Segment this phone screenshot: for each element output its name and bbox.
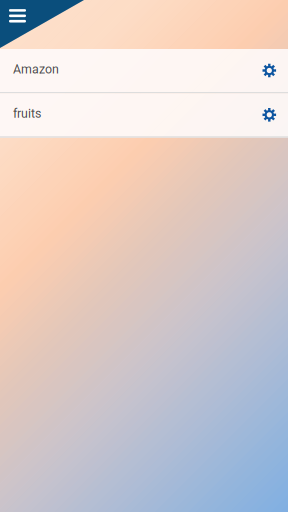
- button[interactable]: fruits: [0, 93, 288, 138]
- staticText: Amazon: [13, 62, 59, 76]
- button[interactable]: Menu: [0, 0, 34, 32]
- staticText: fruits: [13, 106, 41, 121]
- button[interactable]: Amazon: [0, 49, 288, 93]
